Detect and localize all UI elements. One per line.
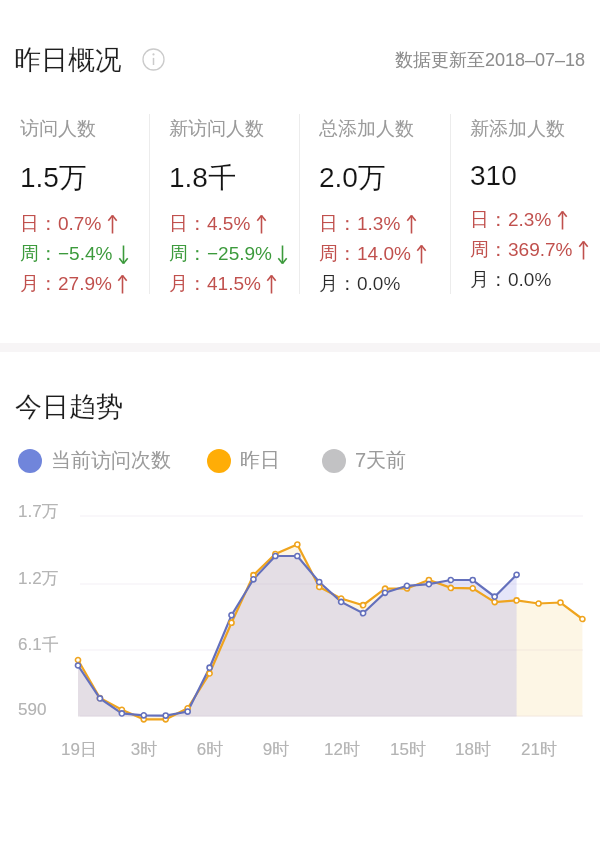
staticText: 月：0.0% [470, 268, 552, 292]
staticText: 周：−5.4% [20, 242, 113, 266]
staticText: 2.0万 [319, 160, 386, 195]
staticText: 1.7万 [18, 501, 59, 522]
staticText: 1.2万 [18, 568, 59, 589]
staticText: 新访问人数 [169, 117, 264, 141]
staticText: 15时 [373, 739, 443, 760]
button[interactable]: 昨日 [207, 448, 280, 473]
button[interactable]: 访问人数 [20, 117, 149, 299]
staticText: 访问人数 [20, 117, 96, 141]
staticText: 日：1.3% [319, 212, 401, 236]
staticText: 周：369.7% [470, 238, 573, 262]
staticText: 总添加人数 [319, 117, 414, 141]
staticText: 9时 [241, 739, 311, 760]
staticText: 1.5万 [20, 160, 87, 195]
staticText: 3时 [109, 739, 179, 760]
staticText: 月：0.0% [319, 272, 401, 296]
staticText: 月：27.9% [20, 272, 112, 296]
staticText: 昨日概况 [14, 43, 122, 77]
staticText: 19日 [44, 739, 114, 760]
staticText: 21时 [504, 739, 574, 760]
button[interactable]: 新添加人数 [470, 117, 599, 295]
button[interactable]: 当前访问次数 [18, 448, 171, 473]
staticText: 月：41.5% [169, 272, 261, 296]
staticText: 日：0.7% [20, 212, 102, 236]
staticText: 12时 [307, 739, 377, 760]
staticText: 日：2.3% [470, 208, 552, 232]
button[interactable]: 总添加人数 [319, 117, 448, 299]
staticText: 今日趋势 [15, 390, 123, 424]
staticText: 新添加人数 [470, 117, 565, 141]
staticText: 6.1千 [18, 634, 59, 655]
staticText: 590 [18, 700, 47, 719]
staticText: 昨日 [240, 448, 280, 473]
staticText: 数据更新至2018–07–18 [0, 49, 585, 72]
staticText: 当前访问次数 [51, 448, 171, 473]
staticText: 周：14.0% [319, 242, 411, 266]
button[interactable]: Info [142, 48, 165, 71]
staticText: 周：−25.9% [169, 242, 272, 266]
staticText: 日：4.5% [169, 212, 251, 236]
button[interactable]: 7天前 [322, 448, 407, 473]
staticText: 6时 [175, 739, 245, 760]
button[interactable]: 新访问人数 [169, 117, 298, 299]
staticText: 7天前 [355, 448, 407, 473]
staticText: 18时 [438, 739, 508, 760]
staticText: 1.8千 [169, 160, 236, 195]
staticText: 310 [470, 160, 517, 191]
